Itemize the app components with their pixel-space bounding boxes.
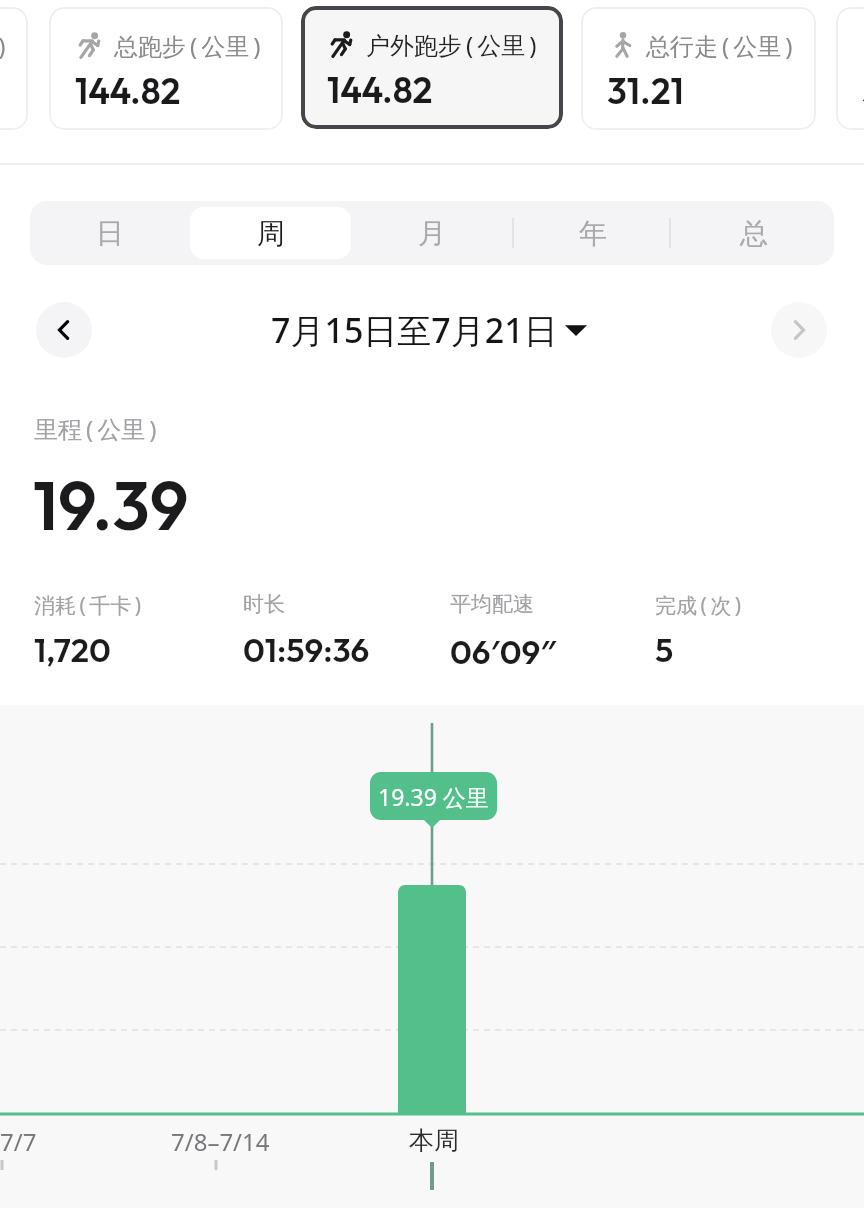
staticText: 19.39 xyxy=(33,462,189,548)
staticText: 144.82 xyxy=(327,67,433,112)
staticText: 7月15日至7月21日 xyxy=(271,307,558,353)
staticText: 里程 ( 公里 ) xyxy=(34,412,157,445)
staticText: 144.82 xyxy=(75,68,181,113)
button[interactable]: 总行走 ( 公里 ) xyxy=(581,7,816,130)
staticText: 时长 xyxy=(243,591,285,617)
staticText: 7/8–7/14 xyxy=(171,1125,270,1158)
staticText: 31.21 xyxy=(607,68,684,113)
staticText: 周 xyxy=(257,216,285,251)
staticText: 总行走 ( 公里 ) xyxy=(646,29,793,62)
staticText: 消耗 ( 千卡 ) xyxy=(34,591,142,620)
staticText: 月 xyxy=(418,216,446,251)
button[interactable]: 总跑步 ( 公里 ) xyxy=(49,7,283,130)
button[interactable]: 总骑行 ( 公里 ) xyxy=(836,7,864,130)
button[interactable]: 年 xyxy=(512,207,673,259)
staticText: 19.39 公里 xyxy=(378,781,489,812)
staticText: 01:59:36 xyxy=(243,629,370,671)
staticText: 总 xyxy=(740,216,768,251)
staticText: 5 xyxy=(655,629,674,671)
button[interactable]: 总跑步 ( 公里 ) xyxy=(0,7,28,130)
staticText: 平均配速 xyxy=(450,591,534,617)
button[interactable]: 周 xyxy=(190,207,351,259)
staticText: 完成 ( 次 ) xyxy=(655,591,742,620)
staticText: 本周 xyxy=(409,1125,459,1156)
button[interactable]: 户外跑步 ( 公里 ) xyxy=(301,6,563,129)
staticText: –7/7 xyxy=(0,1125,37,1158)
staticText: 日 xyxy=(96,216,124,251)
button[interactable]: Previous week xyxy=(36,302,92,358)
button[interactable]: Next week xyxy=(771,302,827,358)
staticText: 年 xyxy=(579,216,607,251)
staticText: 户外跑步 ( 公里 ) xyxy=(366,28,537,61)
button[interactable]: 日 xyxy=(30,207,190,259)
staticText: 3.01 xyxy=(862,68,864,113)
staticText: 06′09″ xyxy=(450,629,556,674)
staticText: 总跑步 ( 公里 ) xyxy=(0,29,6,62)
button[interactable]: 总 xyxy=(673,207,834,259)
staticText: 总跑步 ( 公里 ) xyxy=(114,29,261,62)
button[interactable]: 月 xyxy=(351,207,512,259)
staticText: 1,720 xyxy=(34,629,111,671)
